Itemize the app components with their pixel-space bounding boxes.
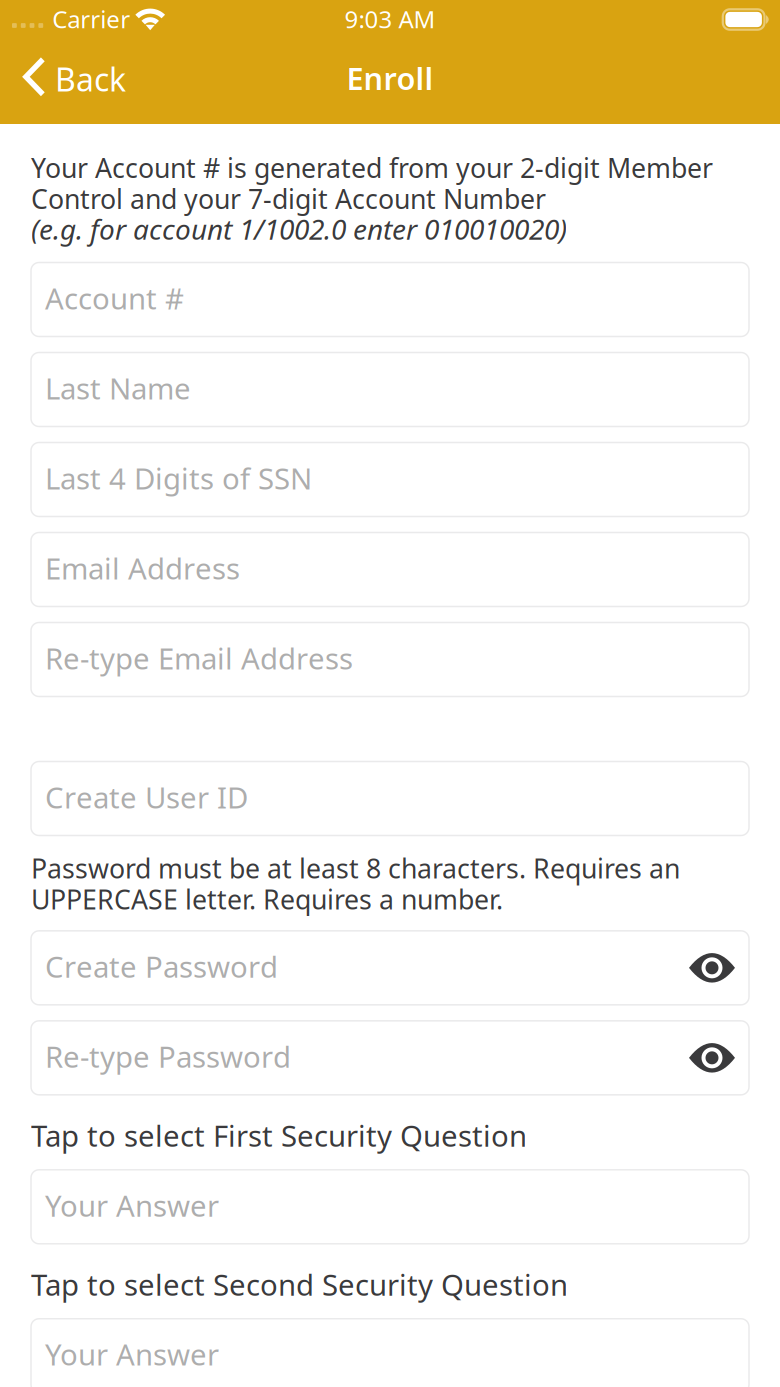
staticText: Email Address — [45, 548, 240, 587]
button[interactable]: Tap to select Second Security Question — [31, 1265, 568, 1304]
button[interactable]: Last Name — [31, 352, 749, 426]
button[interactable]: Re-type Password — [31, 1021, 749, 1095]
button[interactable]: Tap to select First Security Question — [31, 1116, 527, 1155]
staticText: Create User ID — [45, 777, 248, 816]
staticText: Back — [55, 58, 126, 100]
staticText: Your Account # is generated from your 2-… — [31, 150, 713, 185]
staticText: Your Answer — [45, 1335, 219, 1374]
button[interactable]: Account # — [31, 262, 749, 336]
staticText: Last Name — [45, 368, 191, 407]
button[interactable]: Your Answer — [31, 1170, 749, 1244]
button[interactable]: Your Answer — [31, 1319, 749, 1387]
button[interactable]: Show password — [675, 931, 749, 1005]
staticText: UPPERCASE letter. Requires a number. — [31, 881, 503, 917]
button[interactable]: Back — [0, 39, 146, 125]
staticText: Tap to select First Security Question — [31, 1116, 527, 1155]
button[interactable]: Create User ID — [31, 761, 749, 835]
staticText: Create Password — [45, 947, 278, 986]
button[interactable]: Show password — [675, 1021, 749, 1095]
staticText: Re-type Email Address — [45, 638, 353, 677]
staticText: Your Answer — [45, 1186, 219, 1225]
staticText: Enroll — [346, 58, 433, 98]
staticText: Account # — [45, 278, 184, 317]
button[interactable]: Last 4 Digits of SSN — [31, 442, 749, 516]
staticText: 9:03 AM — [344, 3, 435, 35]
button[interactable]: Re-type Email Address — [31, 622, 749, 696]
staticText: Re-type Password — [45, 1037, 291, 1076]
button[interactable]: Email Address — [31, 532, 749, 606]
staticText: Carrier — [52, 3, 130, 35]
staticText: Password must be at least 8 characters. … — [31, 850, 680, 886]
staticText: Last 4 Digits of SSN — [45, 458, 312, 497]
button[interactable]: Create Password — [31, 931, 749, 1005]
staticText: (e.g. for account 1/1002.0 enter 0100100… — [31, 210, 567, 247]
staticText: Control and your 7-digit Account Number — [31, 181, 546, 216]
staticText: Tap to select Second Security Question — [31, 1265, 568, 1304]
